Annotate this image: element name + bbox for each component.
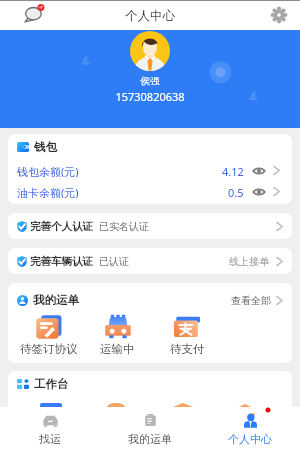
staticText: 线上接单: [229, 255, 269, 268]
button[interactable]: 待支付: [152, 314, 222, 356]
staticText: 15730820638: [0, 89, 300, 104]
button[interactable]: 个人中心: [200, 407, 300, 450]
button[interactable]: 运输中: [83, 314, 152, 356]
button[interactable]: 油卡余额(元): [8, 185, 292, 198]
staticText: 侯强: [0, 75, 300, 87]
staticText: 完善个人认证: [30, 220, 93, 233]
staticText: 工作台: [34, 377, 69, 391]
staticText: 完善车辆认证: [30, 255, 93, 268]
button[interactable]: 完善车辆认证: [8, 248, 292, 274]
button[interactable]: Settings: [271, 7, 287, 23]
button[interactable]: 钱包余额(元): [8, 164, 292, 177]
staticText: 油卡余额(元): [17, 185, 79, 198]
button[interactable]: Messages: [23, 4, 45, 26]
staticText: 个人中心: [125, 8, 175, 24]
staticText: 个人中心: [228, 432, 272, 446]
staticText: 0.5: [228, 185, 244, 198]
button[interactable]: 完善个人认证: [8, 213, 292, 239]
staticText: 已实名认证: [99, 220, 149, 233]
staticText: 找运: [39, 432, 61, 446]
staticText: 我的运单: [128, 432, 172, 446]
staticText: 待支付: [170, 342, 205, 356]
button[interactable]: 待签订协议: [14, 314, 83, 356]
staticText: 运输中: [100, 342, 135, 356]
staticText: 钱包余额(元): [17, 164, 79, 177]
button[interactable]: 我的运单: [100, 407, 200, 450]
button[interactable]: 查看全部: [231, 294, 283, 307]
staticText: 4.12: [222, 164, 244, 177]
staticText: 待签订协议: [20, 342, 78, 356]
button[interactable]: 找运: [0, 407, 100, 450]
staticText: 已认证: [99, 255, 129, 268]
staticText: 钱包: [34, 140, 57, 154]
staticText: 查看全部: [231, 294, 271, 307]
staticText: 我的运单: [33, 293, 79, 307]
